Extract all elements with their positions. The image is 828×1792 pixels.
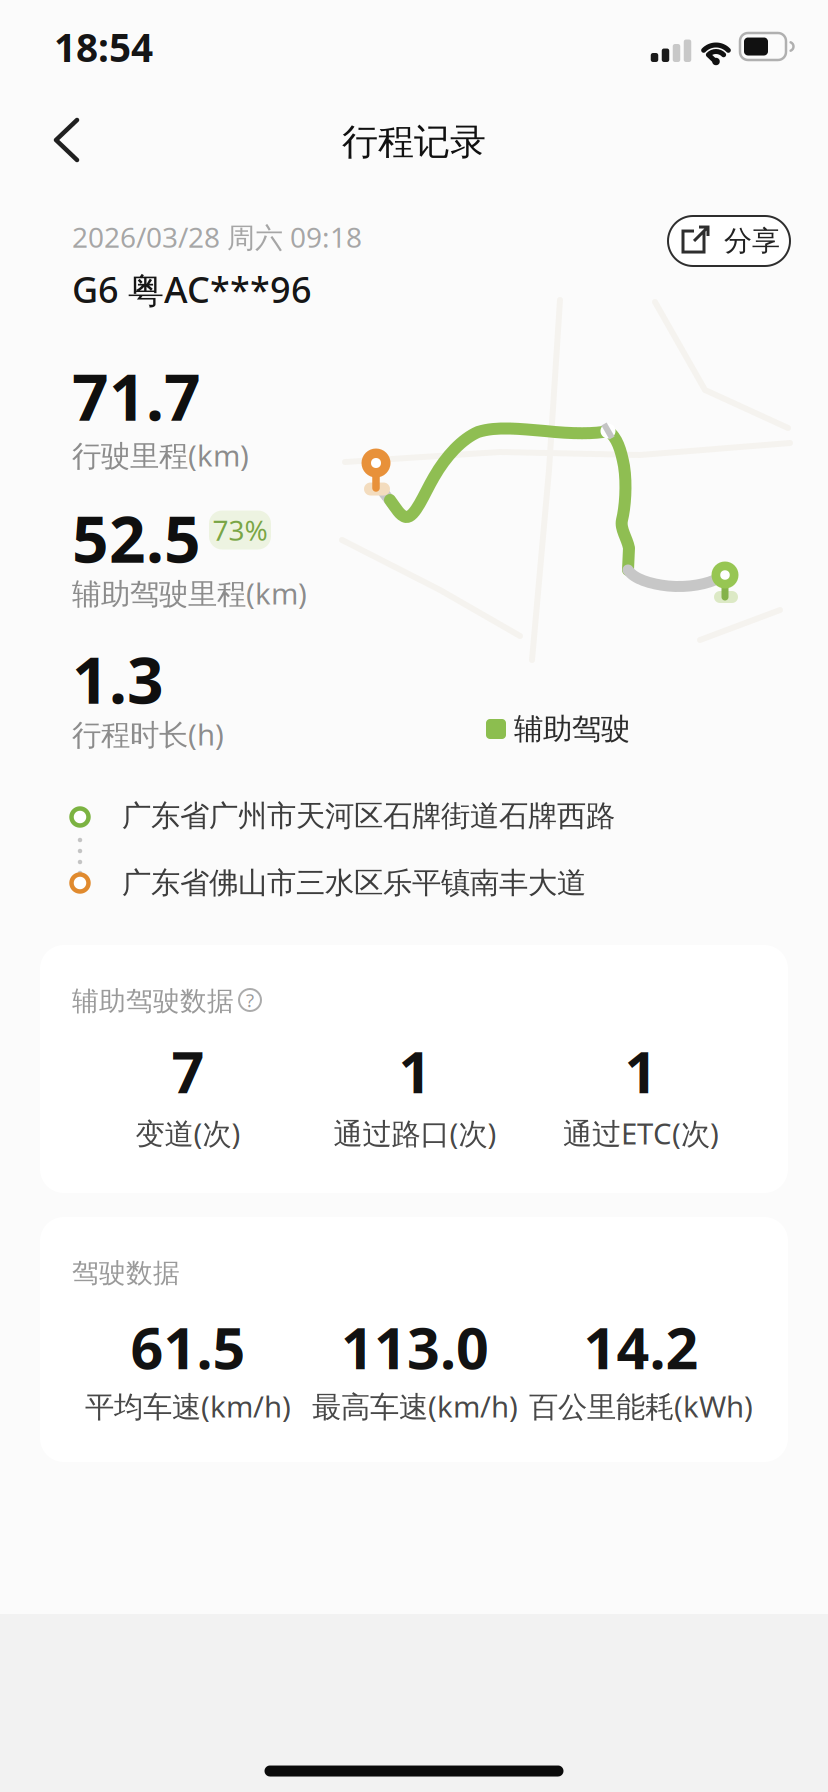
staticText: 广东省广州市天河区石牌街道石牌西路 (122, 798, 615, 834)
staticText: ? (246, 988, 254, 1012)
staticText: 通过路口(次) (333, 1113, 496, 1152)
staticText: 变道(次) (135, 1113, 240, 1152)
staticText: 7 (171, 1033, 204, 1109)
staticText: 辅助驾驶数据 (72, 985, 234, 1017)
staticText: 71.7 (72, 353, 201, 438)
staticText: 73% (212, 511, 267, 549)
staticText: 行程时长(h) (72, 714, 224, 753)
staticText: G6 粤AC***96 (72, 265, 312, 313)
staticText: 驾驶数据 (72, 1257, 180, 1289)
staticText: 行驶里程(km) (72, 435, 249, 474)
staticText: 1.3 (72, 636, 164, 721)
button[interactable]: 返回 (33, 102, 121, 178)
staticText: 1 (624, 1033, 657, 1109)
staticText: 通过ETC(次) (563, 1113, 719, 1152)
staticText: 最高车速(km/h) (312, 1386, 518, 1425)
staticText: 辅助驾驶里程(km) (72, 573, 307, 612)
staticText: 52.5 (72, 495, 201, 580)
staticText: 广东省佛山市三水区乐平镇南丰大道 (122, 865, 586, 901)
staticText: 1 (398, 1033, 431, 1109)
staticText: 14.2 (583, 1309, 698, 1385)
staticText: 分享 (724, 224, 780, 258)
staticText: 113.0 (341, 1309, 489, 1385)
staticText: 百公里能耗(kWh) (529, 1386, 753, 1425)
staticText: 18:54 (54, 21, 153, 73)
staticText: 平均车速(km/h) (85, 1386, 291, 1425)
staticText: 61.5 (130, 1309, 245, 1385)
button[interactable]: 帮助 (235, 985, 265, 1015)
staticText: 2026/03/28 周六 09:18 (72, 218, 362, 256)
staticText: 辅助驾驶 (514, 711, 630, 747)
staticText: 行程记录 (342, 120, 486, 164)
button[interactable]: 分享 (668, 216, 790, 266)
